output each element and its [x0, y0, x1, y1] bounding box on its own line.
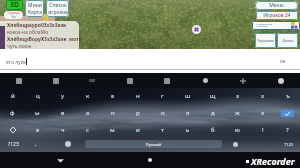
button[interactable]: 7123: [278, 137, 300, 151]
staticText: кокоэ на облаМо: [7, 29, 49, 36]
button[interactable]: л: [175, 106, 200, 120]
button[interactable]: ы: [25, 106, 50, 120]
staticText: е: [111, 92, 115, 100]
button[interactable]: ж: [225, 106, 250, 120]
button[interactable]: Информация о сервере: [252, 21, 300, 30]
staticText: щ: [210, 92, 216, 100]
button[interactable]: ю: [225, 123, 250, 137]
button[interactable]: Theme: [37, 73, 74, 88]
button[interactable]: Period: [226, 137, 244, 151]
button[interactable]: ?: [275, 123, 300, 137]
button[interactable]: о: [150, 106, 175, 120]
button[interactable]: а: [75, 106, 100, 120]
button[interactable]: Menu: [262, 73, 300, 88]
button[interactable]: в: [50, 106, 75, 120]
button[interactable]: Улучшения: [255, 33, 276, 48]
button[interactable]: х: [250, 89, 275, 103]
button[interactable]: ь: [175, 123, 200, 137]
button[interactable]: ч: [50, 123, 75, 137]
button[interactable]: з: [225, 89, 250, 103]
staticText: п: [111, 109, 115, 117]
staticText: ы: [35, 109, 40, 117]
staticText: х: [261, 92, 265, 100]
staticText: т: [161, 126, 164, 134]
button[interactable]: Донаты: [277, 33, 298, 48]
button[interactable]: я: [25, 123, 50, 137]
button[interactable]: GIF: [74, 73, 111, 88]
staticText: о: [161, 109, 165, 117]
button[interactable]: м: [100, 123, 125, 137]
button[interactable]: ?123: [2, 137, 24, 151]
button[interactable]: у: [50, 89, 75, 103]
button[interactable]: Settings: [148, 73, 186, 88]
button[interactable]: Emoji: [58, 137, 78, 151]
staticText: ХлёбецуВоруХ3з3з3аэк мото: [7, 36, 82, 43]
button[interactable]: Home: [142, 152, 158, 168]
button[interactable]: !: [250, 123, 275, 137]
button[interactable]: с: [75, 123, 100, 137]
staticText: ,: [35, 140, 37, 148]
staticText: !: [262, 126, 264, 134]
button[interactable]: е: [100, 89, 125, 103]
button[interactable]: Send: [275, 106, 300, 120]
staticText: Игроков 24: [263, 12, 291, 19]
staticText: Хлебецрауро03з3з3аэк: [7, 22, 67, 29]
button[interactable]: б: [200, 123, 225, 137]
staticText: ок: [280, 58, 286, 65]
staticText: Улучшения: [257, 39, 274, 43]
button[interactable]: Игроков 24: [256, 11, 298, 20]
staticText: ш: [185, 92, 191, 100]
button[interactable]: 3D: [6, 0, 23, 10]
staticText: Мини Карта: [28, 2, 42, 16]
button[interactable]: и: [125, 123, 150, 137]
button[interactable]: п: [100, 106, 125, 120]
button[interactable]: т: [150, 123, 175, 137]
button[interactable]: г: [150, 89, 175, 103]
staticText: р: [136, 109, 140, 117]
button[interactable]: й: [0, 89, 25, 103]
button[interactable]: Clipboard: [111, 73, 148, 88]
staticText: в: [61, 109, 65, 117]
staticText: ?123: [8, 141, 19, 148]
staticText: э: [261, 109, 264, 117]
button[interactable]: Сервера Чат: [4, 11, 23, 19]
button[interactable]: ц: [25, 89, 50, 103]
staticText: Меню: [269, 2, 284, 9]
button[interactable]: э: [250, 106, 275, 120]
button[interactable]: Мини Карта: [25, 0, 44, 17]
button[interactable]: ок: [276, 56, 290, 66]
button[interactable]: Русский: [85, 140, 222, 148]
staticText: XRecorder: [251, 155, 295, 167]
staticText: л: [186, 109, 190, 117]
button[interactable]: ф: [0, 106, 25, 120]
staticText: з: [236, 92, 239, 100]
button[interactable]: Comma: [26, 137, 46, 151]
staticText: Список игроков: [48, 2, 68, 16]
button[interactable]: Mic: [224, 73, 262, 88]
button[interactable]: Shift: [0, 123, 25, 137]
button[interactable]: Hide keyboard: [52, 152, 68, 168]
button[interactable]: р: [125, 106, 150, 120]
staticText: ?: [286, 126, 289, 134]
staticText: й: [11, 92, 15, 100]
staticText: Сервера Чат: [7, 11, 20, 19]
staticText: GIF: [89, 78, 96, 83]
button[interactable]: д: [200, 106, 225, 120]
button[interactable]: к: [75, 89, 100, 103]
button[interactable]: ъ: [275, 89, 300, 103]
staticText: чуть лоюк: [7, 43, 32, 50]
button[interactable]: щ: [200, 89, 225, 103]
staticText: Русский: [146, 142, 162, 147]
staticText: ц: [36, 92, 40, 100]
button[interactable]: Sticker: [0, 73, 37, 88]
staticText: ж: [235, 109, 240, 117]
staticText: у: [61, 92, 65, 100]
staticText: 7123: [284, 142, 294, 147]
staticText: ф: [10, 109, 15, 117]
button[interactable]: н: [125, 89, 150, 103]
button[interactable]: Translate: [186, 73, 224, 88]
button[interactable]: ш: [175, 89, 200, 103]
staticText: ч: [61, 126, 65, 134]
button[interactable]: Список игроков: [46, 0, 69, 17]
button[interactable]: Меню: [255, 1, 298, 10]
